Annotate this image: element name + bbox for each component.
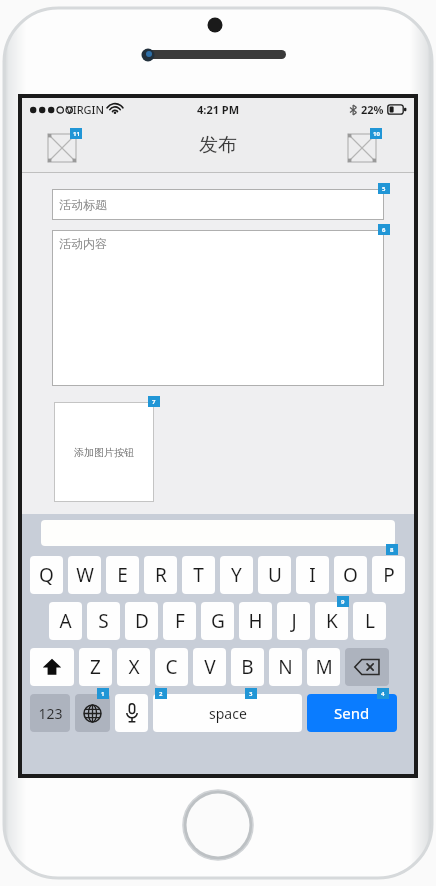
staticText: T xyxy=(193,562,204,588)
staticText: 4 xyxy=(381,690,385,698)
button[interactable]: Q xyxy=(30,556,63,594)
button[interactable]: M xyxy=(307,648,340,686)
staticText: F xyxy=(175,608,185,634)
staticText: 4:21 PM xyxy=(197,102,240,117)
button[interactable]: B xyxy=(231,648,264,686)
staticText: D xyxy=(135,608,149,634)
staticText: 活动标题 xyxy=(59,197,107,212)
button[interactable]: H xyxy=(239,602,272,640)
button[interactable]: Shift xyxy=(30,648,74,686)
button[interactable]: C xyxy=(155,648,188,686)
staticText: G xyxy=(211,608,225,634)
button[interactable]: 活动标题 xyxy=(52,189,384,220)
button[interactable] xyxy=(41,520,395,546)
staticText: H xyxy=(248,608,263,634)
button[interactable]: V xyxy=(193,648,226,686)
staticText: 9 xyxy=(341,598,345,606)
staticText: A xyxy=(59,608,72,634)
button[interactable]: P xyxy=(372,556,405,594)
staticText: K xyxy=(326,608,338,634)
staticText: 发布 xyxy=(199,133,237,157)
staticText: 3 xyxy=(249,690,253,698)
staticText: Y xyxy=(231,562,242,588)
staticText: C xyxy=(165,654,178,680)
button[interactable]: Y xyxy=(220,556,253,594)
staticText: Q xyxy=(39,562,54,588)
staticText: 123 xyxy=(38,704,63,723)
staticText: 6 xyxy=(382,226,386,234)
staticText: 11 xyxy=(73,130,80,138)
button[interactable]: 活动内容 xyxy=(52,230,384,386)
button[interactable]: E xyxy=(106,556,139,594)
button[interactable]: W xyxy=(68,556,101,594)
staticText: 10 xyxy=(373,130,380,138)
staticText: E xyxy=(117,562,128,588)
button[interactable]: I xyxy=(296,556,329,594)
staticText: S xyxy=(98,608,109,634)
button[interactable]: L xyxy=(353,602,386,640)
button[interactable]: G xyxy=(201,602,234,640)
button[interactable]: U xyxy=(258,556,291,594)
staticText: I xyxy=(309,562,316,588)
button[interactable]: O xyxy=(334,556,367,594)
button[interactable]: More xyxy=(348,128,388,162)
button[interactable]: D xyxy=(125,602,158,640)
button[interactable]: Send xyxy=(307,694,397,732)
button[interactable]: A xyxy=(49,602,82,640)
staticText: VIRGIN xyxy=(66,102,105,117)
staticText: 22% xyxy=(361,102,384,117)
staticText: M xyxy=(315,654,333,680)
button[interactable]: Z xyxy=(79,648,112,686)
staticText: O xyxy=(343,562,358,588)
button[interactable]: Language xyxy=(75,694,110,732)
staticText: 2 xyxy=(159,690,163,698)
staticText: P xyxy=(383,562,395,588)
button[interactable]: 123 xyxy=(30,694,70,732)
button[interactable]: space xyxy=(153,694,302,732)
button[interactable]: T xyxy=(182,556,215,594)
button[interactable]: X xyxy=(117,648,150,686)
staticText: V xyxy=(204,654,216,680)
button[interactable]: K xyxy=(315,602,348,640)
staticText: B xyxy=(241,654,254,680)
staticText: 1 xyxy=(101,690,105,698)
staticText: U xyxy=(268,562,282,588)
button[interactable]: Dictate xyxy=(115,694,148,732)
staticText: 5 xyxy=(382,185,386,193)
staticText: X xyxy=(128,654,140,680)
staticText: N xyxy=(278,654,293,680)
staticText: Send xyxy=(334,703,370,723)
staticText: Z xyxy=(90,654,101,680)
button[interactable]: R xyxy=(144,556,177,594)
staticText: R xyxy=(155,562,167,588)
staticText: L xyxy=(365,608,375,634)
staticText: space xyxy=(209,704,247,723)
staticText: 活动内容 xyxy=(59,236,107,251)
staticText: J xyxy=(291,608,297,634)
button[interactable]: S xyxy=(87,602,120,640)
staticText: 7 xyxy=(152,398,156,406)
button[interactable]: N xyxy=(269,648,302,686)
staticText: 8 xyxy=(390,546,394,554)
staticText: W xyxy=(76,562,94,588)
staticText: 添加图片按钮 xyxy=(74,446,134,459)
button[interactable]: Backspace xyxy=(345,648,389,686)
button[interactable]: F xyxy=(163,602,196,640)
button[interactable]: J xyxy=(277,602,310,640)
button[interactable]: 添加图片按钮 xyxy=(54,402,154,502)
button[interactable]: Back xyxy=(48,128,88,162)
